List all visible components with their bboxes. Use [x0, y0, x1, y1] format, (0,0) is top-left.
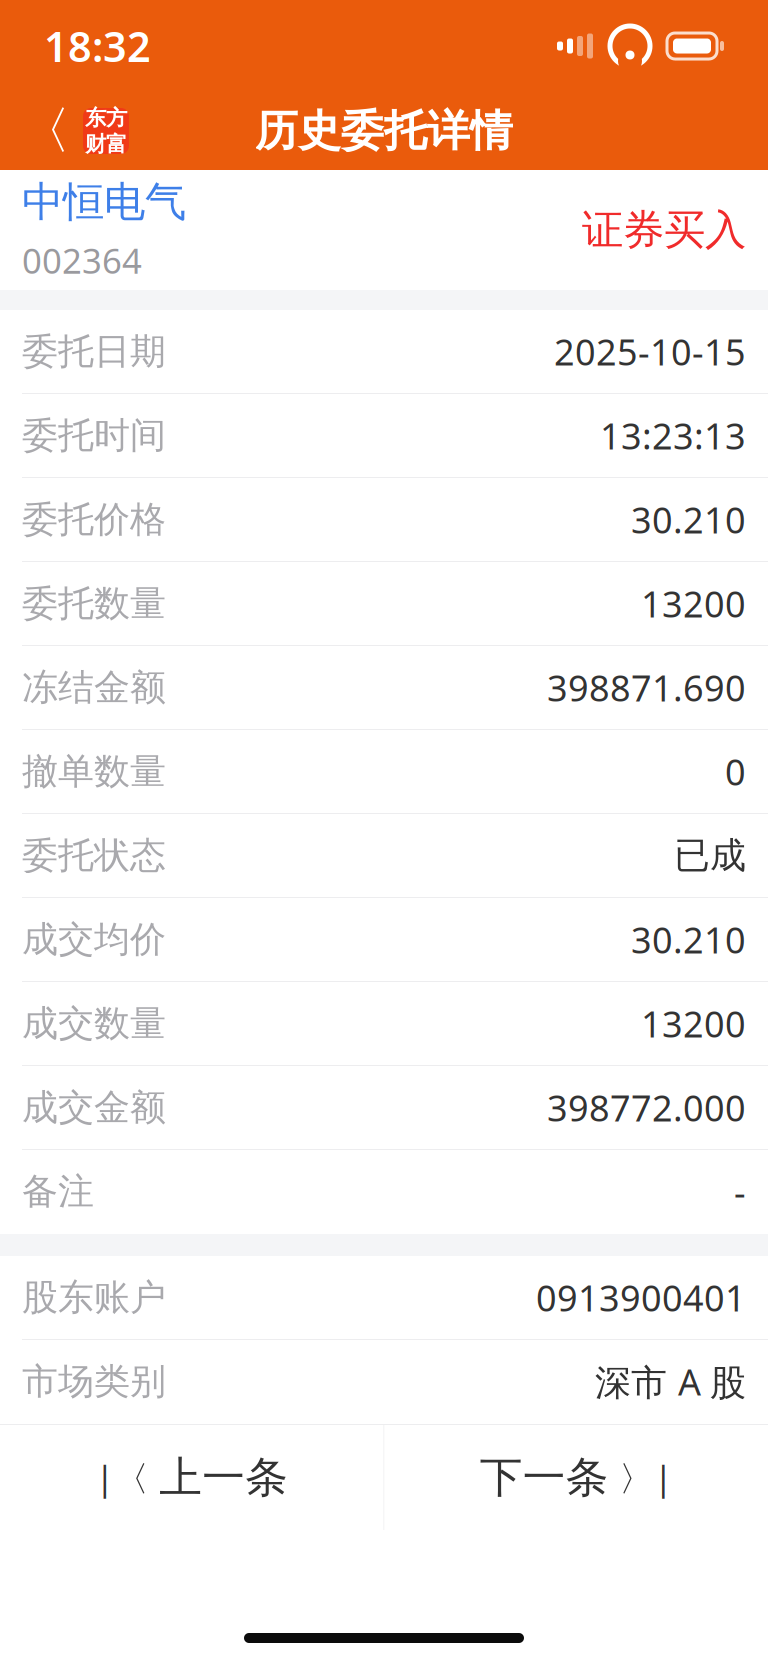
staticText: 2025-10-15 — [554, 328, 746, 375]
staticText: 财富 — [85, 131, 127, 157]
staticText: 30.210 — [631, 496, 746, 543]
staticText: 冻结金额 — [22, 665, 166, 710]
staticText: 撤单数量 — [22, 749, 166, 794]
staticText: 历史委托详情 — [255, 105, 513, 157]
staticText: 备注 — [22, 1169, 94, 1214]
staticText: 委托状态 — [22, 833, 166, 878]
staticText: 成交数量 — [22, 1001, 166, 1046]
staticText: 已成 — [674, 833, 746, 878]
staticText: 398871.690 — [547, 664, 746, 711]
staticText: 13200 — [641, 1000, 746, 1047]
staticText: 〉| — [619, 1454, 673, 1501]
staticText: 委托时间 — [22, 413, 166, 458]
staticText: 股东账户 — [22, 1275, 166, 1320]
staticText: 东方 — [85, 105, 127, 131]
staticText: 中恒电气 — [22, 177, 186, 227]
staticText: 深市 A 股 — [595, 1358, 746, 1405]
staticText: - — [734, 1168, 746, 1215]
staticText: 委托数量 — [22, 581, 166, 626]
button[interactable]: 返回 — [0, 92, 149, 170]
staticText: 委托价格 — [22, 497, 166, 542]
staticText: 上一条 — [159, 1451, 288, 1504]
button[interactable]: 下一条 — [384, 1425, 768, 1530]
staticText: 0913900401 — [536, 1274, 746, 1321]
staticText: 398772.000 — [547, 1084, 746, 1131]
staticText: 13200 — [641, 580, 746, 627]
staticText: 市场类别 — [22, 1359, 166, 1404]
staticText: 成交均价 — [22, 917, 166, 962]
staticText: 18:32 — [44, 19, 151, 73]
staticText: 0 — [725, 748, 746, 795]
staticText: 30.210 — [631, 916, 746, 963]
staticText: 委托日期 — [22, 329, 166, 374]
staticText: 〈 — [20, 100, 71, 162]
staticText: 13:23:13 — [600, 412, 746, 459]
staticText: |〈 — [95, 1454, 149, 1501]
button[interactable]: |〈 — [0, 1425, 383, 1530]
staticText: 002364 — [22, 237, 142, 283]
staticText: 证券买入 — [582, 205, 746, 255]
staticText: 成交金额 — [22, 1085, 166, 1130]
staticText: 下一条 — [480, 1451, 609, 1504]
